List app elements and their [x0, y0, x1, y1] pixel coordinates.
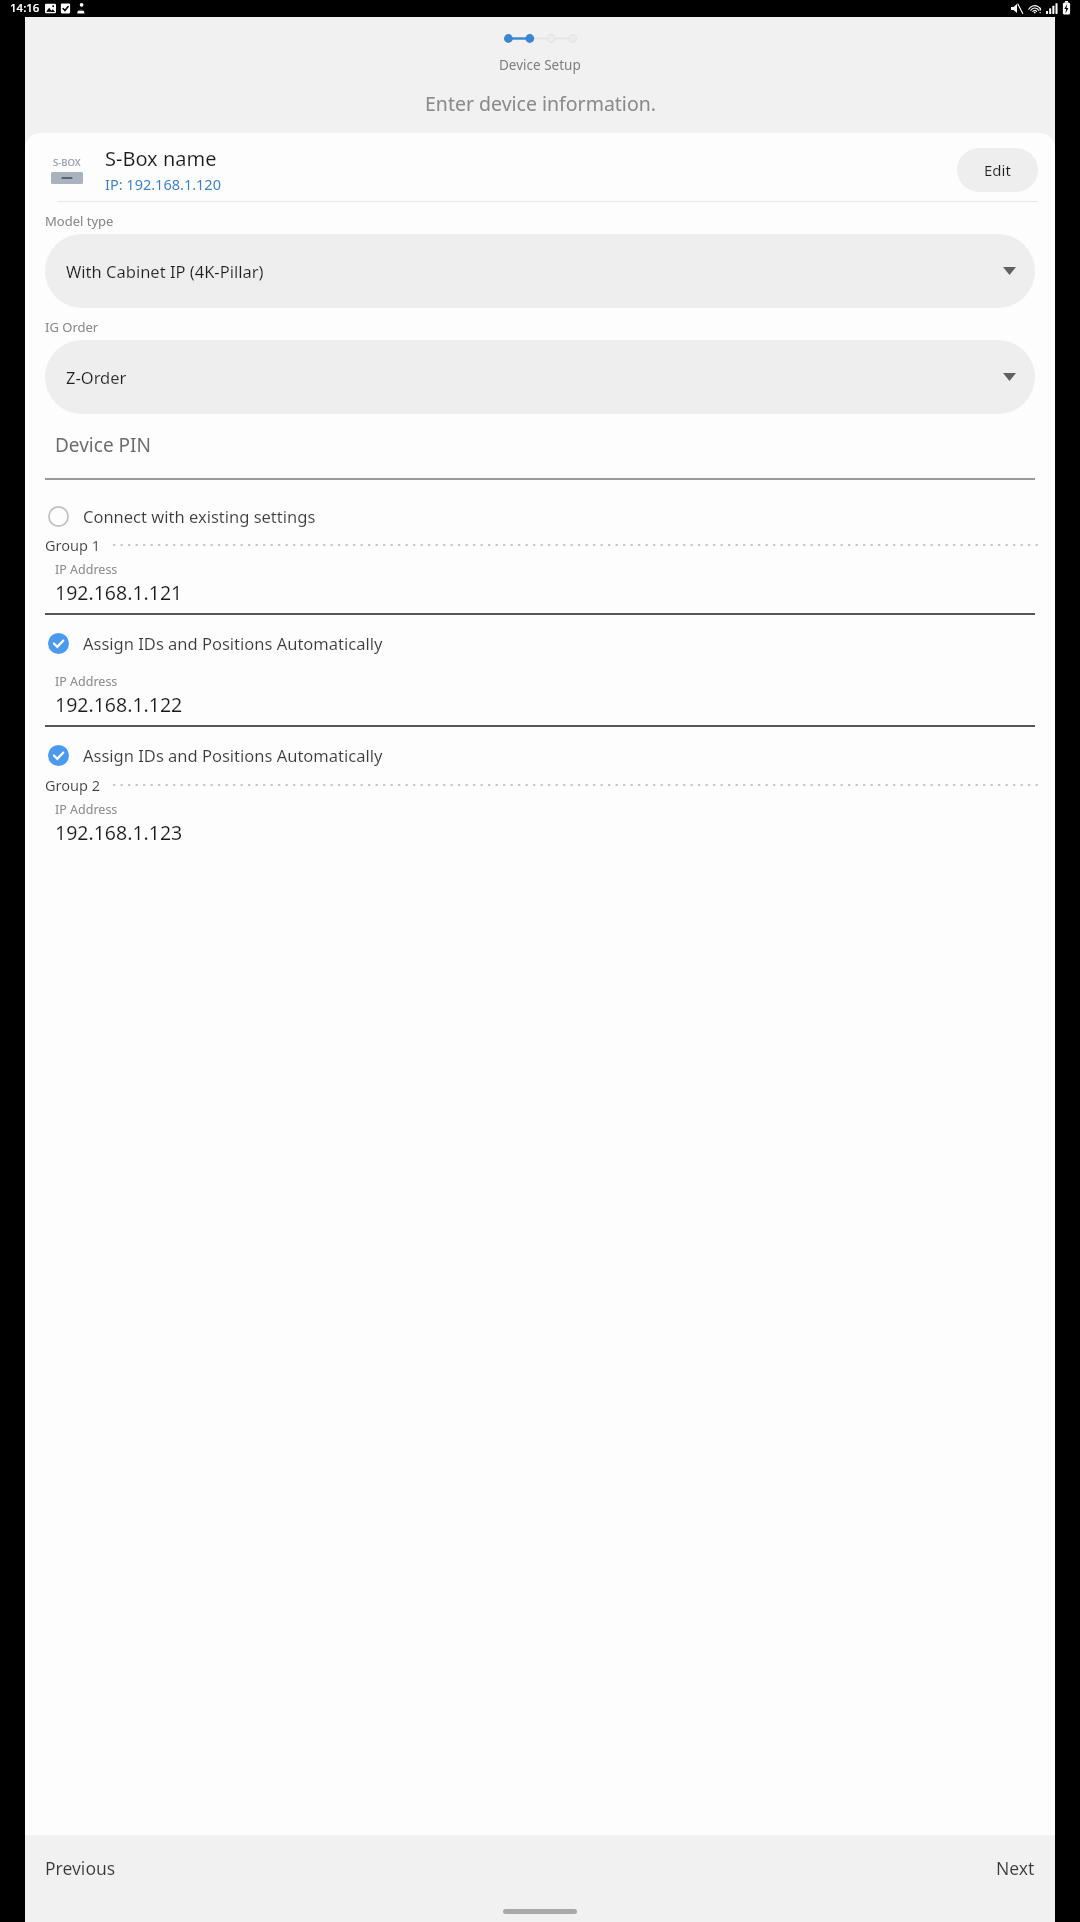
button[interactable]: Z-Order: [45, 340, 1035, 414]
button[interactable]: Assign IDs and Positions Automatically: [25, 739, 1055, 771]
button[interactable]: Edit: [957, 148, 1038, 192]
staticText: Assign IDs and Positions Automatically: [83, 632, 383, 654]
staticText: Edit: [984, 160, 1011, 180]
staticText: With Cabinet IP (4K-Pillar): [66, 260, 1003, 282]
staticText: 192.168.1.122: [55, 691, 183, 718]
staticText: Next: [996, 1856, 1035, 1880]
staticText: IP: 192.168.1.120: [105, 174, 221, 194]
staticText: Device Setup: [499, 56, 581, 74]
staticText: Device PIN: [55, 432, 151, 458]
staticText: IP Address: [55, 801, 118, 818]
button[interactable]: Next: [976, 1835, 1055, 1901]
button[interactable]: Previous: [25, 1835, 136, 1901]
staticText: 192.168.1.121: [55, 579, 183, 606]
staticText: Model type: [45, 212, 114, 230]
staticText: 192.168.1.123: [55, 819, 183, 846]
staticText: Previous: [45, 1856, 116, 1880]
button[interactable]: Connect with existing settings: [25, 500, 1055, 532]
staticText: IP Address: [55, 673, 118, 690]
staticText: 14:16: [10, 0, 40, 16]
staticText: IG Order: [45, 318, 99, 336]
staticText: Enter device information.: [425, 90, 656, 117]
staticText: S-Box name: [105, 145, 217, 172]
staticText: Connect with existing settings: [83, 505, 316, 527]
staticText: Assign IDs and Positions Automatically: [83, 744, 383, 766]
button[interactable]: Assign IDs and Positions Automatically: [25, 627, 1055, 659]
button[interactable]: With Cabinet IP (4K-Pillar): [45, 234, 1035, 308]
other: Sound muted: [1010, 2, 1023, 15]
staticText: S-BOX: [53, 156, 81, 169]
staticText: Group 2: [45, 775, 100, 795]
staticText: IP Address: [55, 561, 118, 578]
staticText: Group 1: [45, 535, 100, 555]
staticText: Z-Order: [66, 366, 1003, 388]
